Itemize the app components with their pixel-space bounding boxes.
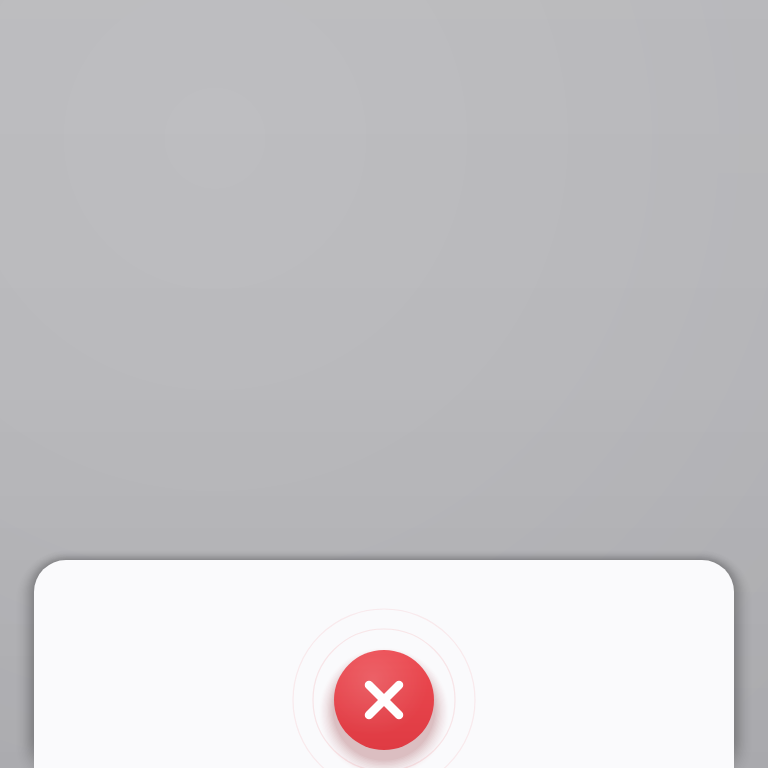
button[interactable]: Cancel call <box>334 650 434 750</box>
